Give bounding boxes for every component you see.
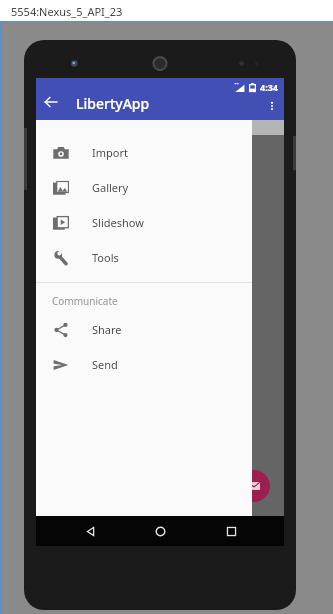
button[interactable]: Slideshow [36, 205, 252, 240]
button[interactable]: Tools [36, 240, 252, 275]
button[interactable]: Import [36, 135, 252, 170]
staticText: LibertyApp [76, 94, 150, 113]
button[interactable]: Navigate up [36, 87, 66, 117]
staticText: Share [92, 322, 122, 337]
staticText: 4:34 [260, 81, 278, 93]
staticText: Send [92, 357, 118, 372]
staticText: Gallery [92, 180, 129, 195]
button[interactable]: More options [260, 94, 284, 118]
button[interactable]: Recent apps [214, 516, 248, 546]
button[interactable]: Gallery [36, 170, 252, 205]
staticText: Tools [92, 250, 119, 265]
staticText: Import [92, 145, 128, 160]
staticText: Slideshow [92, 215, 144, 230]
button[interactable]: Share [36, 312, 252, 347]
staticText: Communicate [52, 294, 118, 308]
button[interactable]: Home [143, 516, 177, 546]
button[interactable]: Send [36, 347, 252, 382]
button[interactable]: Send email [238, 470, 270, 502]
button[interactable]: Back [73, 516, 107, 546]
staticText: 5554:Nexus_5_API_23 [11, 4, 123, 19]
